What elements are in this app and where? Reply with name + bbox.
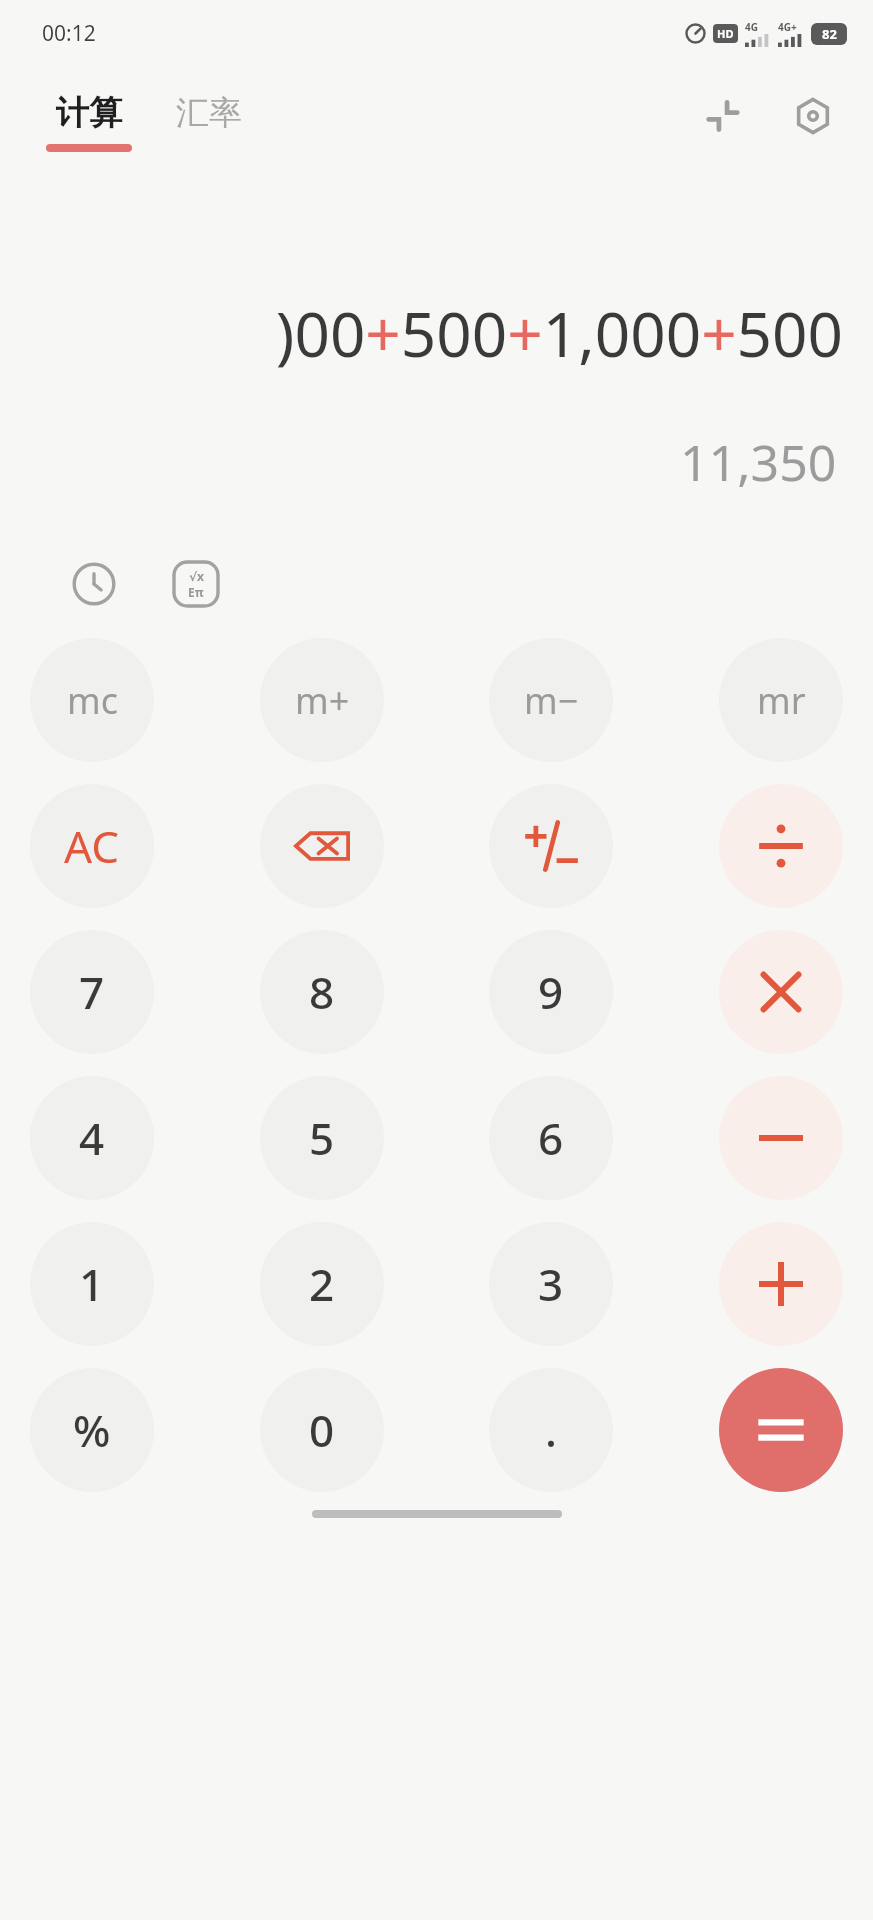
button[interactable]: 8 [260, 930, 384, 1054]
button[interactable]: 7 [30, 930, 154, 1054]
staticText: 9 [538, 962, 564, 1022]
staticText: 4 [79, 1108, 105, 1168]
staticText: 5 [309, 1108, 335, 1168]
button[interactable]: 4 [30, 1076, 154, 1200]
staticText: % [73, 1400, 111, 1460]
staticText: 1 [79, 1254, 105, 1314]
staticText: m− [524, 676, 579, 725]
button[interactable]: Settings [789, 92, 837, 140]
staticText: )00+500+1,000+500 [0, 291, 843, 375]
button[interactable]: 1 [30, 1222, 154, 1346]
button[interactable]: Minus [719, 1076, 843, 1200]
staticText: 00:12 [42, 19, 96, 48]
button[interactable]: 2 [260, 1222, 384, 1346]
staticText: √x [189, 568, 204, 584]
staticText: 汇率 [176, 92, 242, 134]
button[interactable]: Scientific [170, 558, 222, 610]
staticText: 3 [538, 1254, 564, 1314]
button[interactable]: 6 [489, 1076, 613, 1200]
button[interactable]: . [489, 1368, 613, 1492]
button[interactable]: Equals [719, 1368, 843, 1492]
staticText: 计算 [56, 92, 122, 134]
button[interactable]: 汇率 [176, 92, 242, 134]
button[interactable]: Multiply [719, 930, 843, 1054]
staticText: AC [64, 816, 120, 876]
staticText: 11,350 [680, 428, 837, 496]
staticText: mr [757, 676, 806, 725]
staticText: 4G+ [778, 20, 797, 34]
staticText: 4G [745, 20, 758, 34]
button[interactable]: Toggle sign [489, 784, 613, 908]
button[interactable]: 5 [260, 1076, 384, 1200]
button[interactable]: 9 [489, 930, 613, 1054]
button[interactable]: History [68, 558, 120, 610]
staticText: HD [717, 26, 734, 41]
button[interactable]: mc [30, 638, 154, 762]
button[interactable]: Collapse [699, 92, 747, 140]
button[interactable]: Backspace [260, 784, 384, 908]
staticText: 82 [822, 25, 837, 43]
staticText: 2 [309, 1254, 335, 1314]
button[interactable]: 计算 [46, 92, 132, 152]
staticText: 7 [79, 962, 105, 1022]
button[interactable]: Divide [719, 784, 843, 908]
staticText: 0 [309, 1400, 335, 1460]
staticText: . [545, 1400, 557, 1460]
staticText: Eπ [188, 584, 204, 600]
button[interactable]: 0 [260, 1368, 384, 1492]
button[interactable]: All clear [30, 784, 154, 908]
button[interactable]: % [30, 1368, 154, 1492]
button[interactable]: 3 [489, 1222, 613, 1346]
staticText: m+ [295, 676, 350, 725]
button[interactable]: m− [489, 638, 613, 762]
staticText: 6 [538, 1108, 564, 1168]
staticText: 8 [309, 962, 335, 1022]
button[interactable]: mr [719, 638, 843, 762]
button[interactable]: Plus [719, 1222, 843, 1346]
staticText: mc [67, 676, 118, 725]
button[interactable]: m+ [260, 638, 384, 762]
